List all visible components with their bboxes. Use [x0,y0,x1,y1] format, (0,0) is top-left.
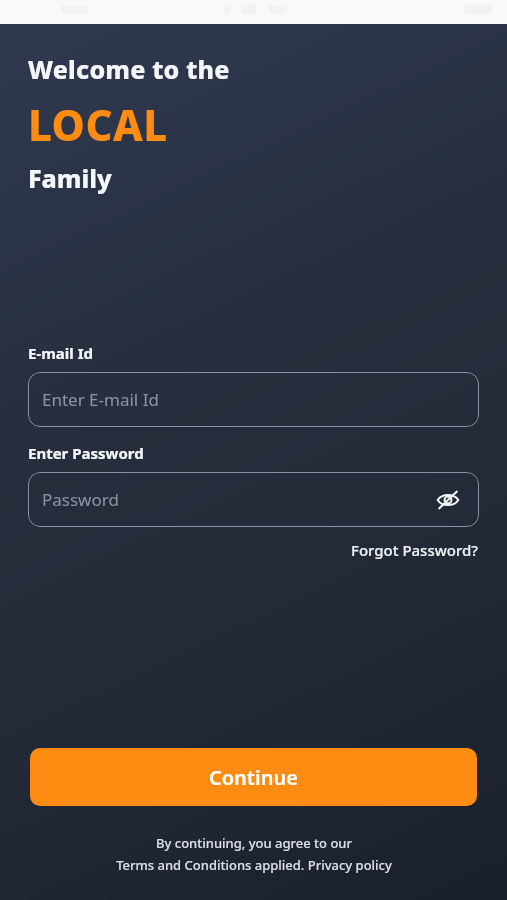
button[interactable]: Show password [431,483,465,517]
staticText: Enter E-mail Id [42,388,465,411]
button[interactable]: Continue [30,748,477,806]
staticText: Enter Password [28,443,144,463]
button[interactable]: Enter E-mail Id [28,372,479,427]
staticText: By continuing, you agree to our [156,834,352,852]
staticText: Family [28,161,112,195]
staticText: LOCAL [28,96,168,153]
button[interactable]: Forgot Password? [351,538,507,562]
staticText: Welcome to the [28,52,230,86]
button[interactable]: Terms and Conditions applied. Privacy po… [116,856,392,874]
staticText: Password [42,488,431,511]
button[interactable]: Password [28,472,479,527]
staticText: E-mail Id [28,343,93,363]
staticText: Continue [209,764,298,791]
staticText: Forgot Password? [351,540,479,560]
